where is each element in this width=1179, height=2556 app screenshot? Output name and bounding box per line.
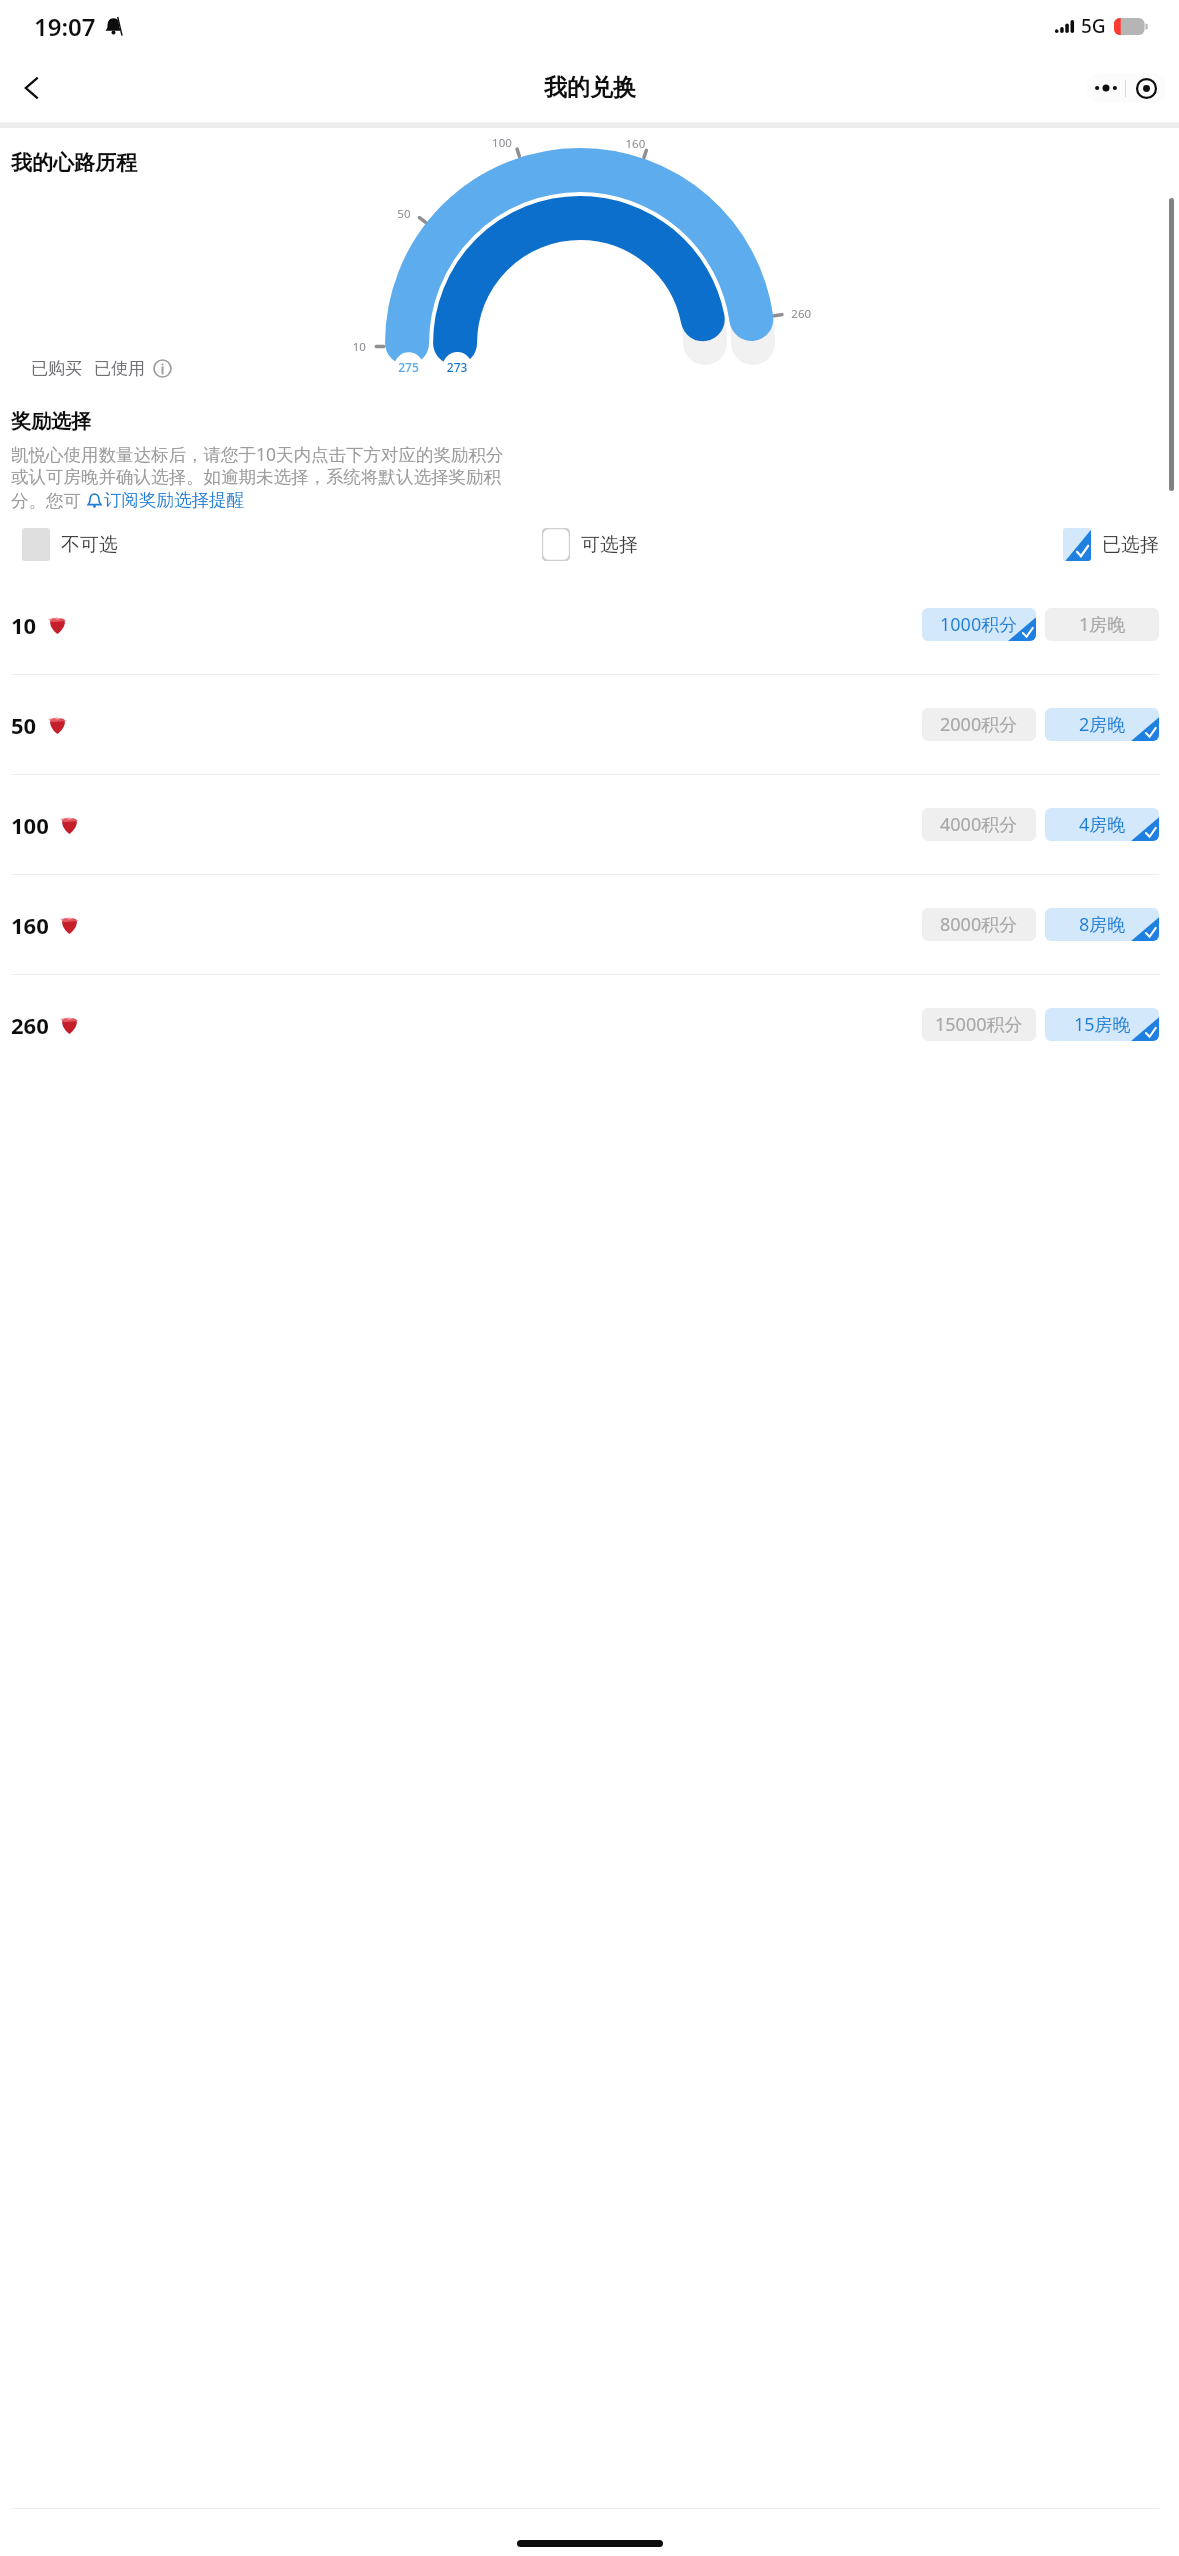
staticText: 8房晚 — [1079, 912, 1126, 937]
staticText: 可选择 — [581, 533, 638, 557]
button[interactable]: 15000积分 — [922, 1008, 1036, 1041]
staticText: 我的兑换 — [544, 73, 636, 102]
staticText: 4房晚 — [1079, 812, 1126, 837]
button[interactable]: 1000积分 — [922, 608, 1036, 641]
button[interactable]: Back — [8, 64, 56, 112]
staticText: 已选择 — [1102, 533, 1159, 557]
staticText: 已使用 — [94, 358, 145, 379]
button[interactable]: More — [1086, 73, 1125, 103]
button[interactable]: 不可选 — [22, 528, 118, 561]
button[interactable]: 15房晚 — [1045, 1008, 1159, 1041]
staticText: 1000积分 — [940, 612, 1018, 637]
button[interactable]: Info — [152, 358, 173, 379]
button[interactable]: 100 — [0, 775, 1179, 874]
staticText: 我的心路历程 — [11, 150, 137, 176]
staticText: 已购买 — [31, 358, 82, 379]
button[interactable]: 8房晚 — [1045, 908, 1159, 941]
button[interactable]: 1房晚 — [1045, 608, 1159, 641]
button[interactable]: 260 — [0, 975, 1179, 1074]
button[interactable]: 4房晚 — [1045, 808, 1159, 841]
button[interactable]: 4000积分 — [922, 808, 1036, 841]
staticText: 或认可房晚并确认选择。如逾期未选择，系统将默认选择奖励积 — [11, 466, 501, 488]
button[interactable]: Close — [1126, 73, 1166, 103]
button[interactable]: 8000积分 — [922, 908, 1036, 941]
button[interactable]: 160 — [0, 875, 1179, 974]
button[interactable]: 已选择 — [1063, 528, 1159, 561]
staticText: 订阅奖励选择提醒 — [104, 489, 244, 511]
button[interactable]: 2000积分 — [922, 708, 1036, 741]
staticText: 160 — [11, 910, 49, 940]
staticText: 分。您可 — [11, 488, 86, 512]
staticText: 2房晚 — [1079, 712, 1126, 737]
staticText: 1房晚 — [1079, 612, 1126, 637]
staticText: 8000积分 — [940, 912, 1018, 937]
staticText: 凯悦心使用数量达标后，请您于10天内点击下方对应的奖励积分 — [11, 442, 504, 466]
staticText: 4000积分 — [940, 812, 1018, 837]
staticText: 不可选 — [61, 533, 118, 557]
button[interactable]: 10 — [0, 575, 1179, 674]
button[interactable]: 可选择 — [542, 528, 638, 561]
button[interactable]: 50 — [0, 675, 1179, 774]
button[interactable]: 订阅奖励选择提醒 — [86, 489, 244, 511]
staticText: 19:07 — [34, 10, 96, 43]
staticText: 15房晚 — [1074, 1012, 1131, 1037]
staticText: 50 — [11, 710, 37, 740]
staticText: 10 — [11, 610, 37, 640]
staticText: 2000积分 — [940, 712, 1018, 737]
button[interactable]: 2房晚 — [1045, 708, 1159, 741]
staticText: 奖励选择 — [11, 409, 91, 434]
staticText: 5G — [1081, 13, 1106, 39]
staticText: 260 — [11, 1010, 49, 1040]
staticText: 15000积分 — [935, 1012, 1023, 1037]
staticText: 100 — [11, 810, 49, 840]
